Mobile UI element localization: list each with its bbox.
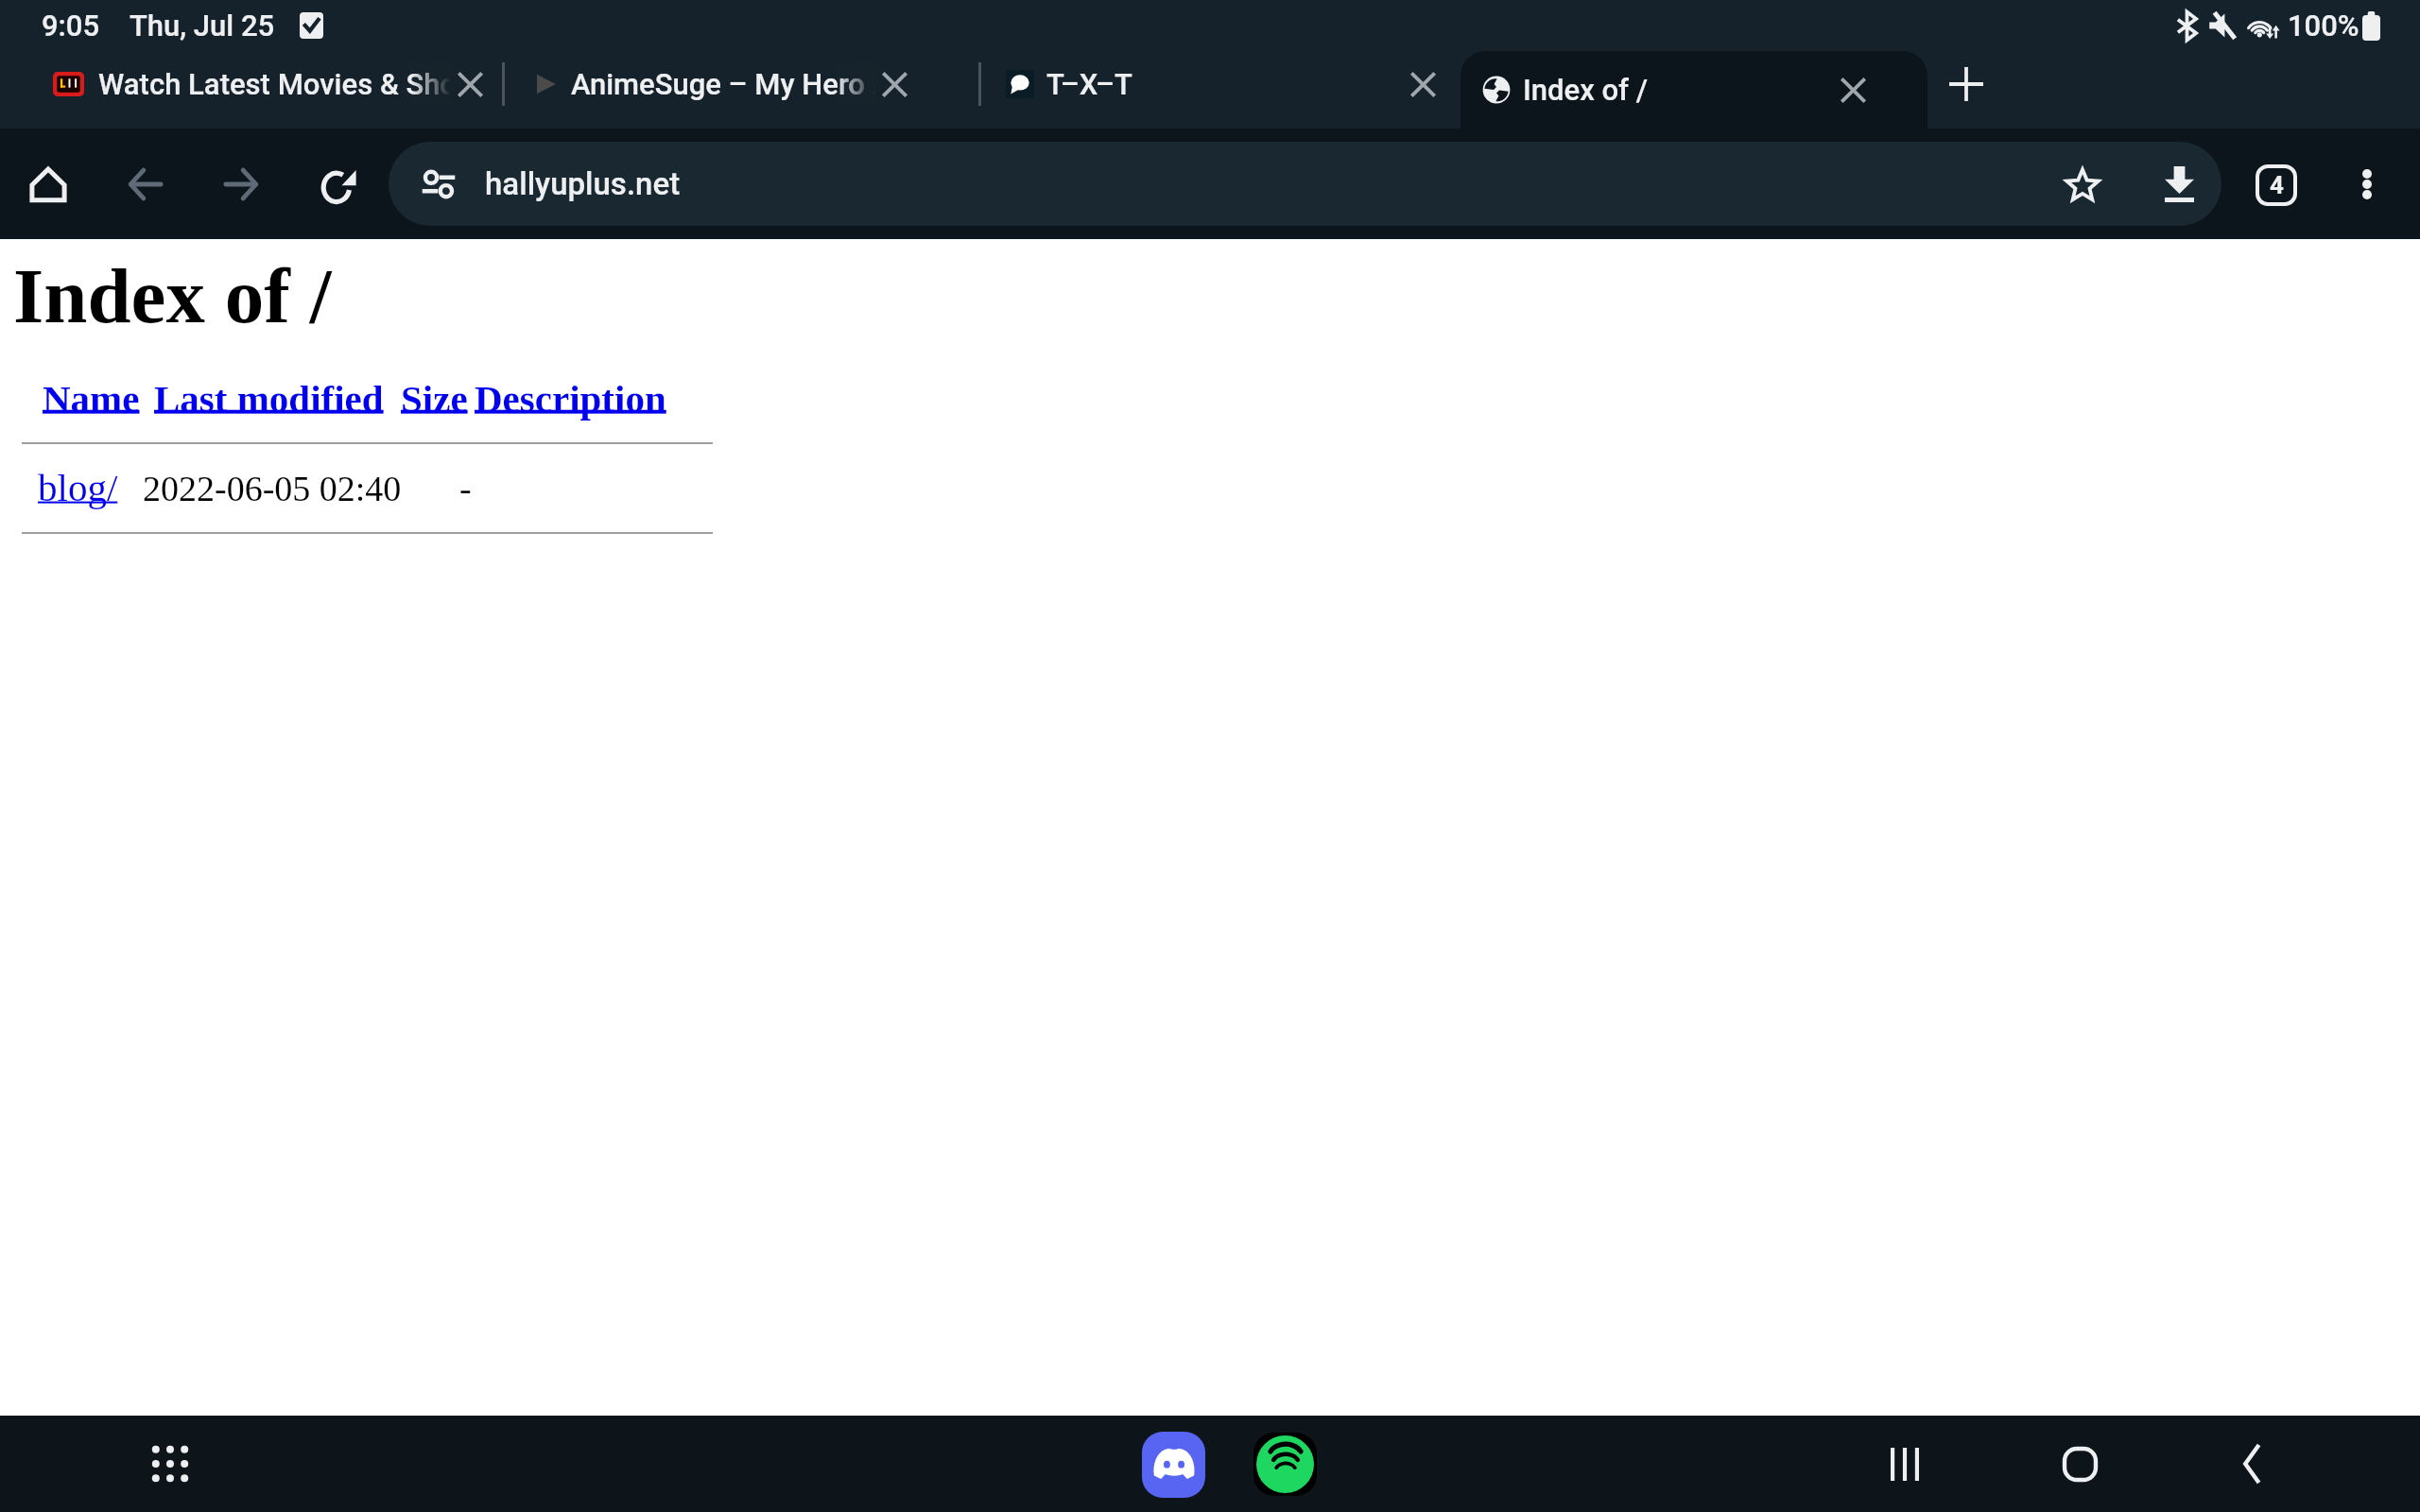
staticText: 9:05 <box>42 9 100 43</box>
button[interactable]: Watch Latest Movies & Shows <box>38 45 495 123</box>
staticText: T–X–T <box>1046 67 1132 101</box>
button[interactable]: Discord <box>1142 1432 1205 1498</box>
button[interactable]: T–X–T <box>994 45 1452 123</box>
button[interactable]: Bookmark <box>2046 147 2119 221</box>
staticText: - <box>459 469 472 508</box>
staticText: 100% <box>2288 9 2359 43</box>
button[interactable]: Close tab <box>1393 55 1452 113</box>
button[interactable]: Spotify <box>1253 1433 1317 1496</box>
button[interactable]: Back <box>2215 1426 2290 1502</box>
button[interactable]: Size <box>401 377 468 420</box>
button[interactable]: Home <box>2042 1426 2117 1502</box>
button[interactable]: hallyuplus.net <box>389 142 2221 226</box>
button[interactable]: blog/ <box>38 466 118 508</box>
staticText: Index of / <box>13 252 332 339</box>
button[interactable]: New tab <box>1937 55 1996 113</box>
staticText: Index of / <box>1523 73 1649 107</box>
button[interactable]: More options <box>2330 147 2404 221</box>
button[interactable]: Description <box>475 377 666 420</box>
button[interactable]: Forward <box>204 147 278 221</box>
button[interactable]: Name <box>43 377 140 420</box>
staticText: 2022-06-05 02:40 <box>143 469 402 508</box>
staticText: 4 <box>2270 171 2284 199</box>
button[interactable]: Reload <box>302 147 375 221</box>
button[interactable]: Home <box>11 147 85 221</box>
button[interactable]: Close tab <box>865 55 924 113</box>
staticText: hallyuplus.net <box>485 165 681 202</box>
button[interactable]: Apps <box>137 1431 203 1497</box>
button[interactable]: Close tab <box>1824 60 1882 119</box>
button[interactable]: Switch tabs <box>2239 147 2313 221</box>
button[interactable]: Recents <box>1867 1426 1943 1502</box>
button[interactable]: Back <box>109 147 182 221</box>
button[interactable]: Downloads <box>2142 147 2216 221</box>
staticText: Watch Latest Movies & Shows <box>98 67 451 101</box>
button[interactable]: Last modified <box>154 377 384 420</box>
button[interactable]: Index of / <box>1461 51 1927 129</box>
button[interactable]: AnimeSuge – My Hero Academia <box>518 45 964 123</box>
button[interactable]: Close tab <box>441 55 499 113</box>
staticText: AnimeSuge – My Hero Academia <box>571 67 875 101</box>
staticText: Thu, Jul 25 <box>130 9 275 43</box>
